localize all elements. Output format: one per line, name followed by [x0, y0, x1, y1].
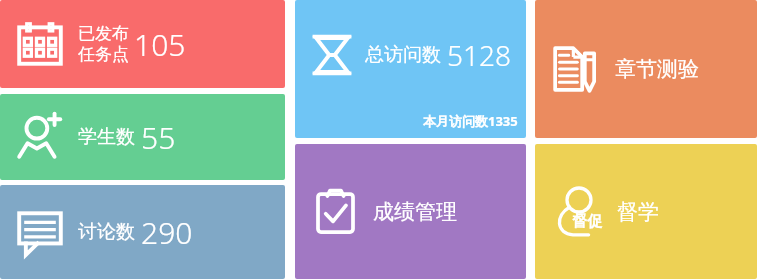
staticText: 督促 [572, 212, 602, 231]
button[interactable]: 学生数 55 [0, 94, 285, 180]
button[interactable]: 已发布任务点 105 [0, 0, 285, 88]
staticText: 本月访问数1335 [423, 112, 518, 130]
button[interactable]: 督学 [535, 144, 757, 279]
staticText: 任务点 [78, 44, 129, 65]
staticText: 已发布 [78, 23, 129, 44]
staticText: 学生数 [78, 125, 135, 149]
staticText: 105 [134, 24, 186, 65]
staticText: 成绩管理 [373, 199, 457, 225]
button[interactable]: 总访问数 5128 [295, 0, 526, 138]
staticText: 55 [141, 117, 176, 158]
button[interactable]: 讨论数 290 [0, 185, 285, 279]
staticText: 总访问数 [365, 43, 441, 67]
staticText: 督学 [617, 199, 659, 225]
staticText: 章节测验 [615, 56, 699, 82]
staticText: 290 [141, 212, 193, 253]
button[interactable]: 章节测验 [535, 0, 757, 138]
button[interactable]: 成绩管理 [295, 144, 526, 279]
staticText: 5128 [447, 36, 511, 74]
staticText: 讨论数 [78, 220, 135, 244]
